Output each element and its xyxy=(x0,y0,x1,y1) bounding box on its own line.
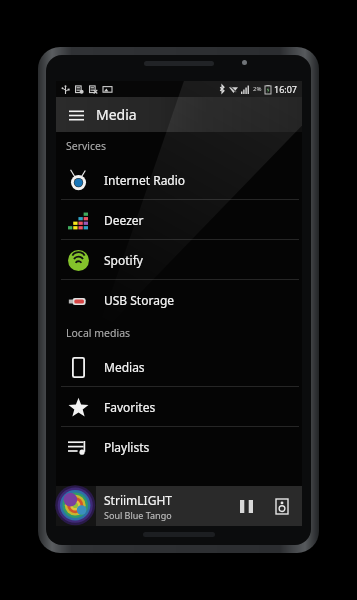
staticText: Spotify xyxy=(104,252,143,268)
staticText: Local medias xyxy=(66,326,131,340)
staticText: Deezer xyxy=(104,212,144,228)
button[interactable]: Internet Radio xyxy=(56,160,302,199)
button[interactable]: Playlists xyxy=(56,427,302,466)
button[interactable]: StriimLIGHT xyxy=(56,486,302,526)
staticText: Medias xyxy=(104,359,145,375)
staticText: Media xyxy=(96,105,137,124)
button[interactable]: Spotify xyxy=(56,240,302,279)
staticText: 16:07 xyxy=(274,83,298,95)
staticText: Playlists xyxy=(104,439,150,455)
button[interactable]: Deezer xyxy=(56,200,302,239)
button[interactable]: Medias xyxy=(56,347,302,386)
button[interactable]: Pause xyxy=(231,491,261,521)
staticText: Internet Radio xyxy=(104,172,186,188)
staticText: Soul Blue Tango xyxy=(104,509,172,521)
button[interactable]: Open navigation drawer xyxy=(65,104,87,126)
staticText: USB Storage xyxy=(104,292,175,308)
staticText: StriimLIGHT xyxy=(104,492,172,508)
staticText: Services xyxy=(66,139,107,153)
staticText: Favorites xyxy=(104,399,156,415)
button[interactable]: Select output device xyxy=(267,491,297,521)
button[interactable]: Favorites xyxy=(56,387,302,426)
staticText: 2% xyxy=(253,85,262,93)
button[interactable]: USB Storage xyxy=(56,280,302,319)
